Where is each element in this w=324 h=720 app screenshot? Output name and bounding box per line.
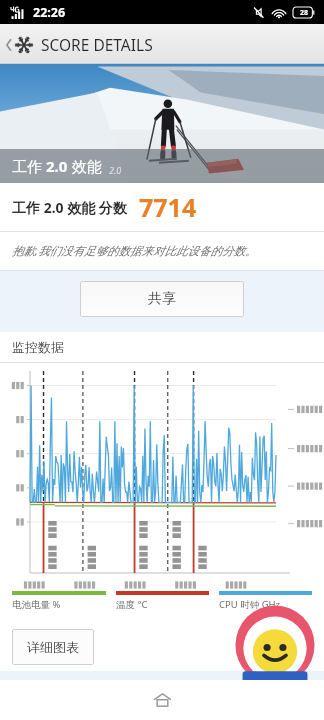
button[interactable]: 共享 [80,281,244,317]
button[interactable]: Home [145,683,179,717]
staticText: 22:26 [33,4,66,21]
staticText: 温度 °C [116,598,148,611]
button[interactable]: Back [0,28,161,61]
staticText: 28 [300,8,309,18]
staticText: 工作 [12,156,46,176]
staticText: CPU 时钟 GHz [219,598,281,611]
staticText: 工作 2.0 效能 分数 [12,198,127,217]
staticText: 共享 [148,290,176,308]
staticText: SCORE DETAILS [41,34,153,55]
staticText: 效能 [68,156,102,176]
staticText: 详细图表 [27,639,79,655]
staticText: 2.0 [46,156,68,176]
button[interactable]: 详细图表 [12,629,94,665]
staticText: 监控数据 [12,339,64,355]
staticText: 抱歉,我们没有足够的数据来对比此设备的分数。 [12,243,257,259]
staticText: 电池电量 % [12,598,61,611]
staticText: 7714 [139,190,197,224]
staticText: 2.0 [109,164,122,176]
